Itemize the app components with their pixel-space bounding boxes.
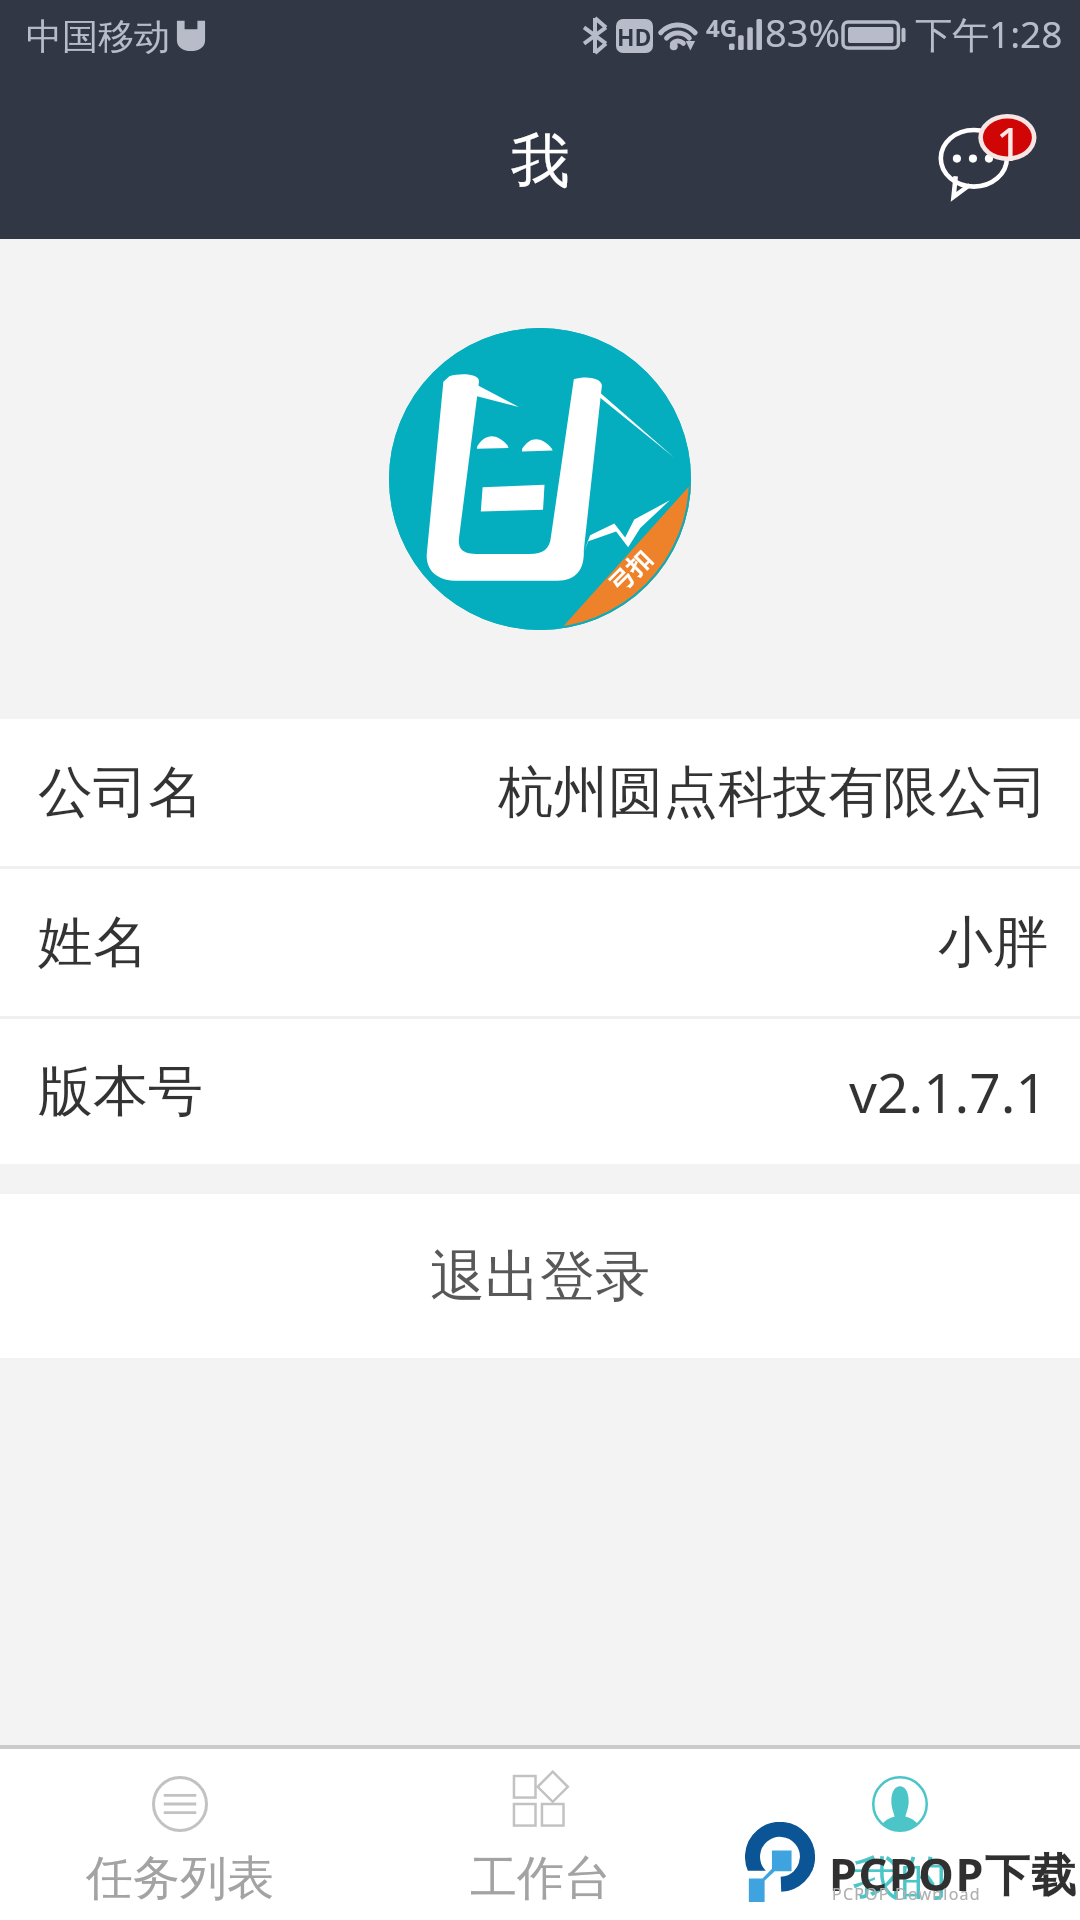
staticText: 4G: [706, 11, 738, 44]
staticText: 任务列表: [86, 1849, 274, 1908]
button[interactable]: 公司名: [0, 719, 1080, 866]
staticText: v2.1.7.1: [849, 1054, 1048, 1129]
staticText: 我: [511, 124, 570, 198]
staticText: 83%: [765, 6, 841, 58]
button[interactable]: 任务列表: [0, 1749, 360, 1920]
button[interactable]: 工作台: [360, 1749, 720, 1920]
button[interactable]: 我的: [720, 1749, 1080, 1920]
button[interactable]: 姓名: [0, 869, 1080, 1016]
staticText: 1: [996, 112, 1023, 175]
button[interactable]: Messages: [921, 100, 1051, 210]
staticText: 工作台: [470, 1849, 611, 1908]
staticText: HD: [617, 21, 652, 52]
staticText: 下午1:28: [915, 8, 1063, 59]
staticText: 退出登录: [430, 1242, 650, 1311]
staticText: 姓名: [38, 908, 148, 977]
staticText: 公司名: [38, 758, 203, 827]
staticText: 我的: [853, 1849, 947, 1908]
staticText: 小胖: [938, 908, 1048, 977]
staticText: PCPOP下载: [829, 1843, 1078, 1904]
staticText: 杭州圆点科技有限公司: [498, 758, 1048, 827]
staticText: PCPOP Download: [832, 1883, 981, 1905]
staticText: 中国移动: [26, 14, 170, 59]
button[interactable]: 退出登录: [0, 1194, 1080, 1358]
button[interactable]: 版本号: [0, 1019, 1080, 1164]
staticText: 版本号: [38, 1057, 203, 1126]
